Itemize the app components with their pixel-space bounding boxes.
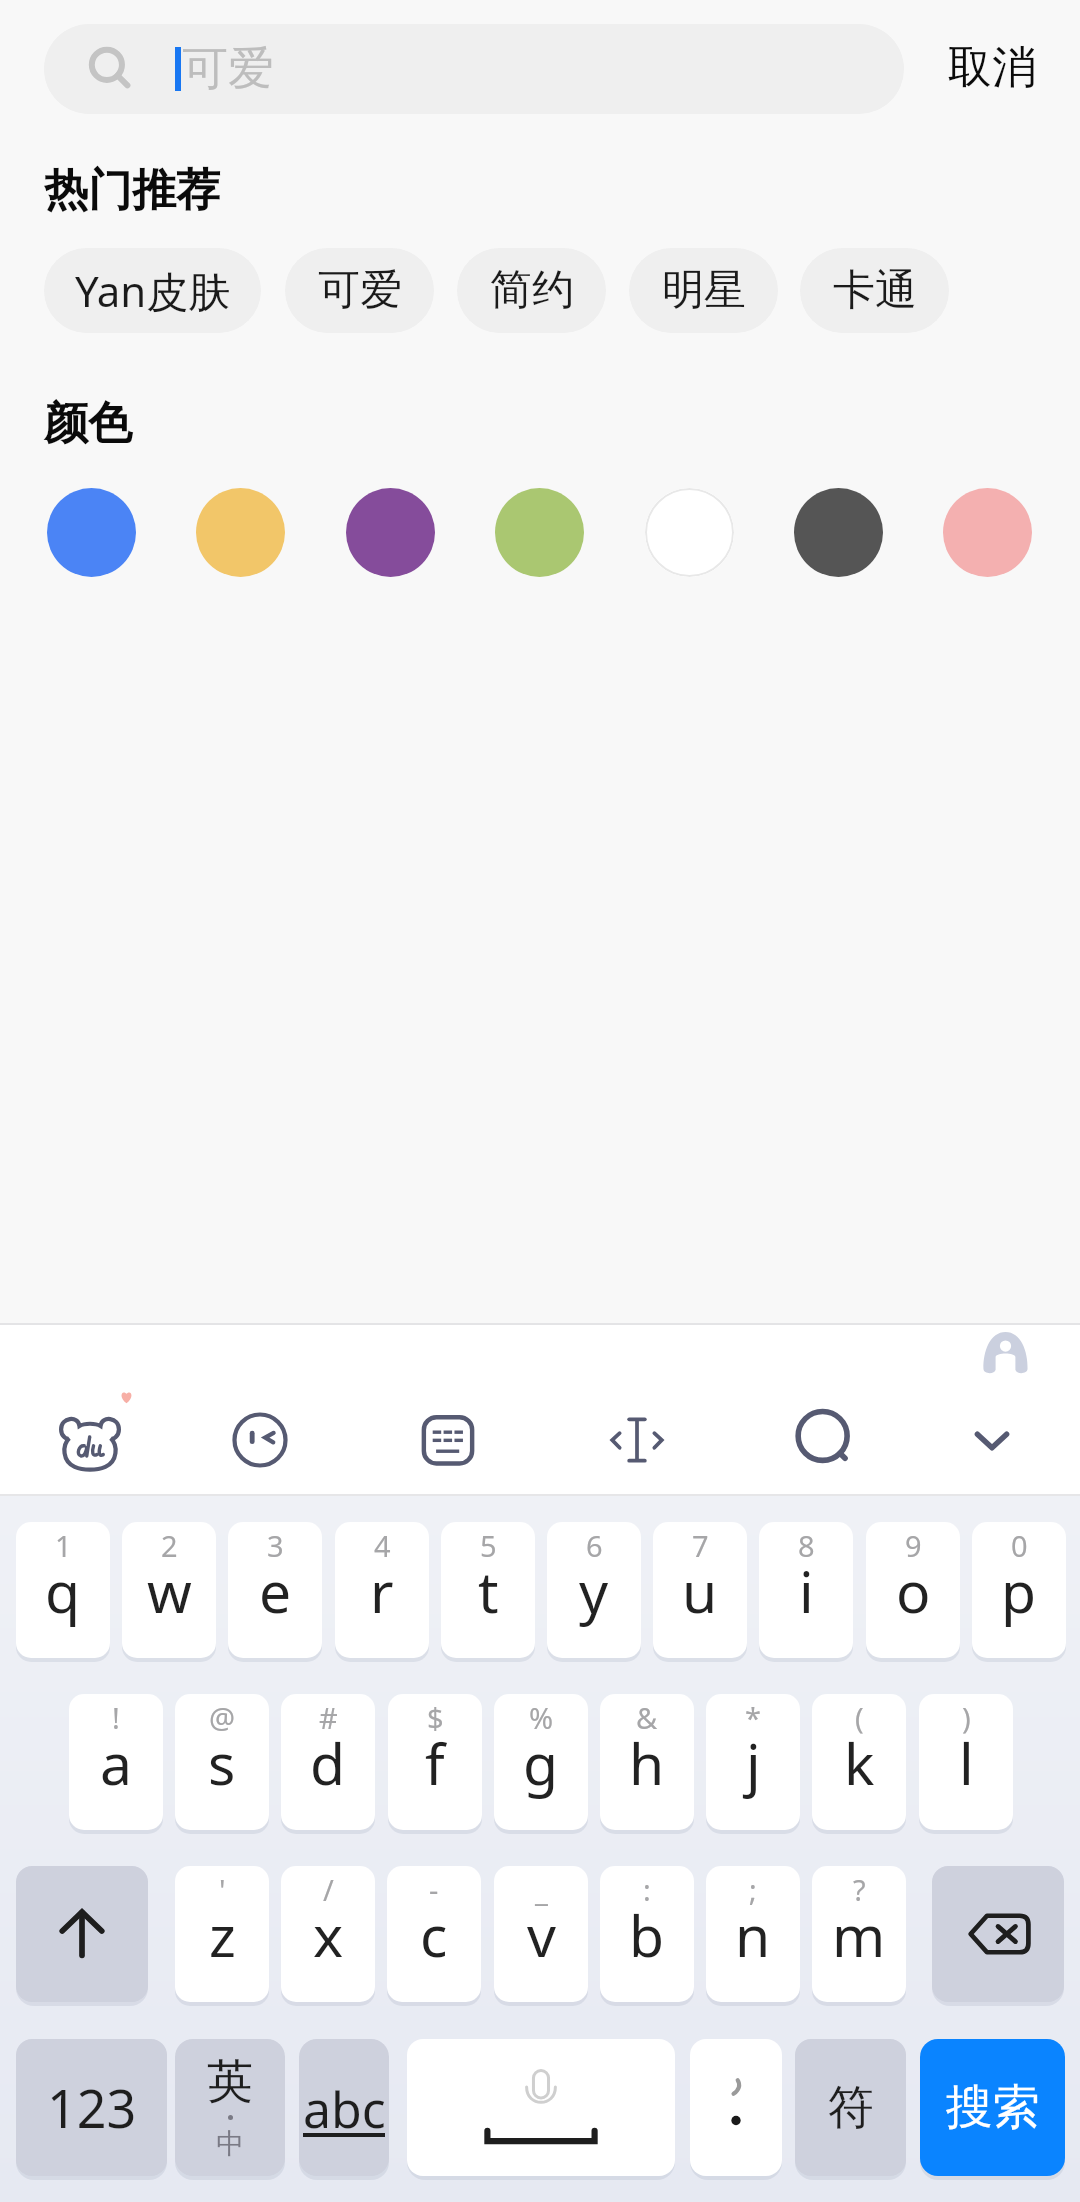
button[interactable]: * <box>706 1694 800 1830</box>
staticText: & <box>636 1698 658 1737</box>
button[interactable]: 2 <box>122 1522 216 1658</box>
staticText: # <box>319 1698 338 1737</box>
staticText: 明星 <box>662 264 746 317</box>
button[interactable]: 7 <box>653 1522 747 1658</box>
button[interactable]: Keyboard layout <box>386 1378 510 1502</box>
button[interactable]: - <box>387 1866 481 2002</box>
staticText: : <box>643 1870 651 1909</box>
staticText: u <box>682 1552 718 1630</box>
staticText: 英 <box>207 2053 253 2111</box>
button[interactable]: @ <box>175 1694 269 1830</box>
staticText: % <box>529 1698 554 1737</box>
button[interactable]: & <box>600 1694 694 1830</box>
staticText: 7 <box>692 1526 709 1565</box>
staticText: / <box>323 1870 334 1909</box>
other: AI assistant <box>983 1331 1028 1376</box>
button[interactable]: Baidu input <box>28 1378 152 1502</box>
button[interactable]: 取消 <box>912 22 1072 112</box>
button[interactable]: Dark <box>794 488 883 577</box>
staticText: 0 <box>1011 1526 1028 1565</box>
button[interactable]: % <box>494 1694 588 1830</box>
staticText: 8 <box>798 1526 815 1565</box>
button[interactable]: 可爱 <box>44 24 904 114</box>
button[interactable]: : <box>600 1866 694 2002</box>
button[interactable]: 6 <box>547 1522 641 1658</box>
button[interactable]: Cursor move <box>575 1378 699 1502</box>
button[interactable]: 123 <box>16 2039 167 2176</box>
staticText: 热门推荐 <box>44 163 220 218</box>
staticText: $ <box>427 1698 444 1737</box>
button[interactable]: Green <box>495 488 584 577</box>
button[interactable]: 3 <box>228 1522 322 1658</box>
staticText: ( <box>855 1698 864 1737</box>
staticText: 中 <box>216 2126 244 2161</box>
button[interactable]: Hide keyboard <box>930 1378 1054 1502</box>
staticText: ! <box>112 1698 120 1737</box>
button[interactable]: Shift <box>16 1866 148 2002</box>
staticText: a <box>100 1724 132 1802</box>
staticText: Yan皮肤 <box>75 262 231 319</box>
button[interactable]: 明星 <box>629 248 778 333</box>
staticText: 123 <box>47 2072 137 2143</box>
button[interactable]: White <box>645 488 734 577</box>
staticText: d <box>310 1724 346 1802</box>
button[interactable]: 符 <box>795 2039 906 2176</box>
staticText: q <box>45 1552 81 1630</box>
staticText: n <box>735 1896 771 1974</box>
staticText: @ <box>209 1698 236 1737</box>
button[interactable]: Pink <box>943 488 1032 577</box>
button[interactable]: # <box>281 1694 375 1830</box>
button[interactable]: Blue <box>47 488 136 577</box>
staticText: b <box>629 1896 665 1974</box>
button[interactable]: 简约 <box>457 248 606 333</box>
button[interactable]: 可爱 <box>285 248 434 333</box>
button[interactable]: Search <box>762 1378 886 1502</box>
staticText: - <box>429 1870 439 1909</box>
staticText: ) <box>962 1698 971 1737</box>
staticText: p <box>1001 1552 1037 1630</box>
button[interactable]: abc <box>299 2039 389 2176</box>
button[interactable]: Purple <box>346 488 435 577</box>
button[interactable]: Emoji <box>198 1378 322 1502</box>
button[interactable]: 9 <box>866 1522 960 1658</box>
staticText: f <box>425 1724 445 1802</box>
button[interactable]: 0 <box>972 1522 1066 1658</box>
staticText: r <box>370 1552 394 1630</box>
staticText: k <box>844 1724 875 1802</box>
staticText: c <box>420 1896 448 1974</box>
staticText: l <box>959 1724 974 1802</box>
staticText: ; <box>749 1870 757 1909</box>
button[interactable]: ) <box>919 1694 1013 1830</box>
button[interactable]: Comma period <box>690 2039 782 2176</box>
staticText: 4 <box>374 1526 391 1565</box>
button[interactable]: 8 <box>759 1522 853 1658</box>
button[interactable]: / <box>281 1866 375 2002</box>
button[interactable]: $ <box>388 1694 482 1830</box>
staticText: t <box>478 1552 499 1630</box>
button[interactable]: ? <box>812 1866 906 2002</box>
button[interactable]: Yan皮肤 <box>44 248 261 333</box>
button[interactable]: Yellow <box>196 488 285 577</box>
button[interactable]: ' <box>175 1866 269 2002</box>
staticText: h <box>629 1724 665 1802</box>
staticText: abc <box>303 2075 386 2143</box>
button[interactable]: ! <box>69 1694 163 1830</box>
button[interactable]: 搜索 <box>920 2039 1065 2176</box>
button[interactable]: 4 <box>335 1522 429 1658</box>
button[interactable]: Space <box>407 2039 675 2176</box>
staticText: 可爱 <box>182 40 274 98</box>
button[interactable]: 1 <box>16 1522 110 1658</box>
staticText: * <box>745 1698 761 1737</box>
button[interactable]: 卡通 <box>800 248 949 333</box>
button[interactable]: _ <box>494 1866 588 2002</box>
button[interactable]: ( <box>812 1694 906 1830</box>
staticText: i <box>799 1552 814 1630</box>
staticText: y <box>579 1552 609 1630</box>
button[interactable]: Backspace <box>932 1866 1064 2002</box>
button[interactable]: 5 <box>441 1522 535 1658</box>
staticText: o <box>896 1552 931 1630</box>
staticText: 简约 <box>490 264 574 317</box>
button[interactable]: ; <box>706 1866 800 2002</box>
staticText: 取消 <box>948 40 1036 95</box>
button[interactable]: Switch Chinese English <box>175 2039 285 2176</box>
